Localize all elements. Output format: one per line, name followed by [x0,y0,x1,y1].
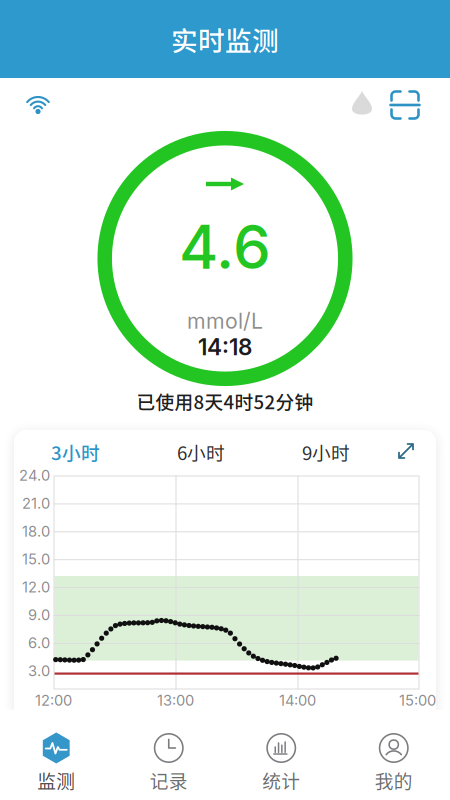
staticText: 监测 [37,766,75,793]
staticText: 13:00 [157,692,194,709]
staticText: 14:18 [198,333,252,361]
staticText: mmol/L [187,308,263,334]
staticText: 4.6 [179,211,271,283]
button[interactable]: 3小时 [32,436,118,468]
button[interactable]: 记录 [112,710,225,800]
button[interactable]: 6小时 [158,436,244,468]
staticText: 3.0 [28,662,50,680]
staticText: 9小时 [302,438,350,465]
staticText: 15:00 [399,692,436,709]
staticText: 6.0 [28,634,50,652]
button[interactable]: Sensor status [342,83,382,127]
staticText: 3小时 [51,438,100,465]
staticText: 18.0 [22,522,50,540]
button[interactable]: 统计 [225,710,337,800]
button[interactable]: 我的 [337,710,450,800]
button[interactable]: 9小时 [283,436,369,468]
staticText: 9.0 [28,606,50,624]
staticText: 24.0 [19,467,50,484]
button[interactable]: Scan sensor [383,83,427,127]
staticText: 已使用8天4时52分钟 [136,387,313,414]
staticText: 12.0 [22,578,50,596]
staticText: 实时监测 [171,20,279,58]
staticText: 14:00 [279,692,316,709]
button[interactable]: 监测 [0,710,112,800]
staticText: 12:00 [35,692,72,709]
staticText: 6小时 [177,438,225,465]
button[interactable]: Signal strength [11,81,65,125]
staticText: 记录 [150,766,188,793]
staticText: 统计 [262,766,300,793]
staticText: 我的 [375,766,413,793]
staticText: 15.0 [22,550,50,568]
button[interactable]: Expand chart [389,435,423,467]
staticText: 21.0 [22,494,50,512]
